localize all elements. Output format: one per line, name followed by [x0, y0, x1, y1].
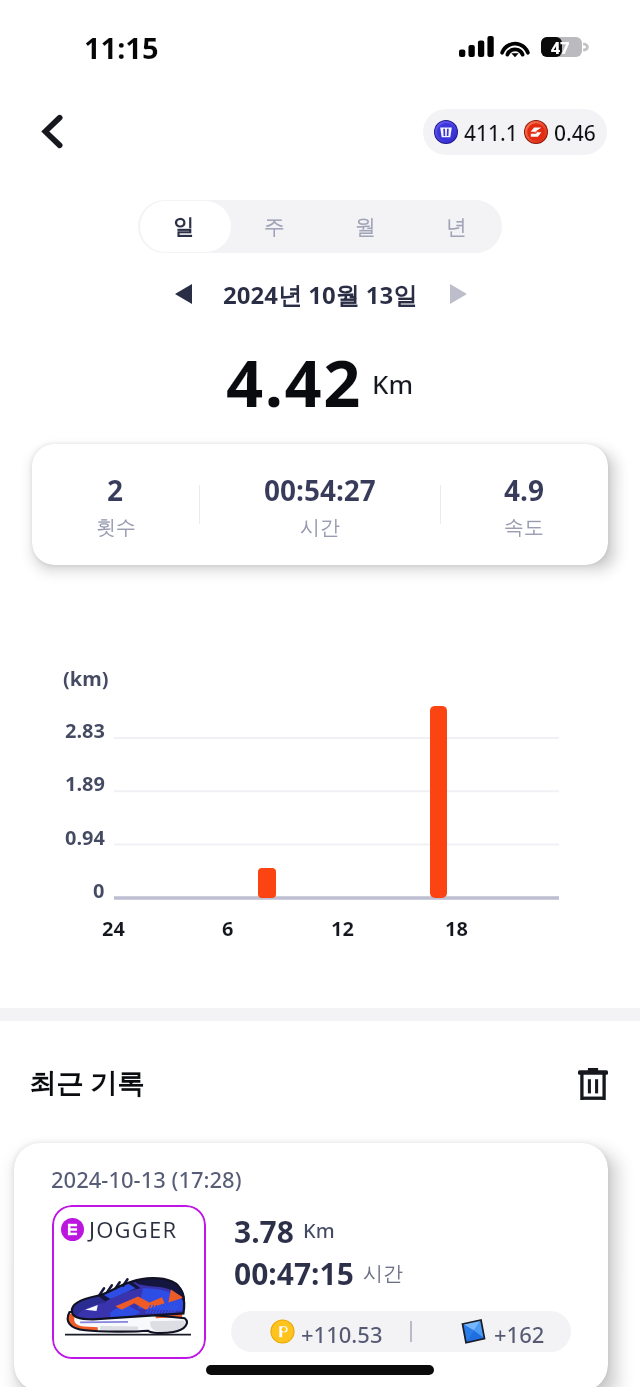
- staticText: 18: [445, 915, 468, 941]
- staticText: 1.89: [65, 770, 105, 796]
- staticText: 0.94: [65, 824, 105, 850]
- staticText: 0: [93, 877, 105, 903]
- staticText: 24: [102, 915, 125, 941]
- staticText: 4.9: [504, 471, 544, 509]
- staticText: (km): [63, 665, 109, 692]
- button[interactable]: Token balance 411.1 W and 0.46 S: [423, 109, 607, 155]
- staticText: Km: [303, 1217, 335, 1244]
- staticText: 횟수: [96, 515, 136, 540]
- button[interactable]: 주: [229, 200, 320, 253]
- button[interactable]: 월: [320, 200, 411, 253]
- button[interactable]: +110.53: [231, 1311, 571, 1352]
- staticText: 시간: [300, 515, 340, 540]
- staticText: 일: [173, 214, 194, 240]
- staticText: +110.53: [301, 1319, 383, 1349]
- button[interactable]: Next day: [436, 272, 480, 316]
- staticText: 12: [331, 915, 354, 941]
- button[interactable]: 4.9: [440, 471, 608, 540]
- staticText: 최근 기록: [29, 1064, 145, 1101]
- staticText: JOGGER: [89, 1214, 178, 1244]
- staticText: 411.1: [464, 119, 518, 148]
- staticText: Km: [372, 366, 414, 401]
- button[interactable]: 2: [32, 471, 199, 540]
- staticText: 시간: [363, 1261, 403, 1286]
- staticText: 2.83: [65, 717, 105, 743]
- staticText: 0.46: [554, 119, 596, 148]
- staticText: 4.42: [226, 338, 362, 427]
- staticText: 속도: [504, 515, 544, 540]
- staticText: 주: [264, 214, 285, 240]
- staticText: 00:54:27: [264, 471, 376, 509]
- button[interactable]: 일: [138, 200, 229, 253]
- button[interactable]: Delete records: [570, 1060, 616, 1106]
- staticText: 3.78: [234, 1211, 294, 1252]
- staticText: +162: [494, 1319, 545, 1349]
- staticText: 47: [551, 37, 570, 57]
- staticText: 2024-10-13 (17:28): [51, 1164, 242, 1194]
- staticText: 년: [446, 214, 467, 240]
- staticText: 월: [355, 214, 376, 240]
- button[interactable]: Back: [28, 107, 76, 155]
- staticText: 2024년 10월 13일: [223, 278, 418, 311]
- button[interactable]: 2024-10-13 (17:28): [14, 1143, 608, 1387]
- button[interactable]: 00:54:27: [199, 471, 440, 540]
- staticText: 11:15: [84, 28, 159, 67]
- staticText: 6: [222, 915, 234, 941]
- button[interactable]: 년: [411, 200, 502, 253]
- button[interactable]: JOGGER: [52, 1205, 206, 1359]
- staticText: 00:47:15: [234, 1253, 354, 1294]
- staticText: 2: [107, 471, 124, 509]
- button[interactable]: Previous day: [161, 272, 205, 316]
